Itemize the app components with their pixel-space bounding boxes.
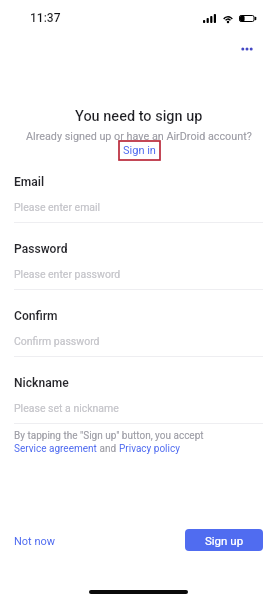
staticText: Confirm password <box>14 335 100 347</box>
staticText: Email <box>14 175 45 189</box>
staticText: Already signed up or have an AirDroid ac… <box>26 130 252 143</box>
staticText: Nickname <box>14 376 69 390</box>
button[interactable]: More options <box>231 33 263 65</box>
button[interactable]: Service agreement <box>14 443 97 455</box>
button[interactable]: Not now <box>14 535 56 548</box>
button[interactable]: Privacy policy <box>119 443 180 455</box>
staticText: Please set a nickname <box>14 402 119 414</box>
staticText: Not now <box>14 535 56 548</box>
button[interactable]: Sign in <box>119 141 160 160</box>
button[interactable]: Sign up <box>185 529 263 551</box>
staticText: By tapping the "Sign up" button, you acc… <box>14 430 204 442</box>
staticText: and <box>97 443 119 455</box>
staticText: Sign in <box>123 144 156 157</box>
staticText: Sign up <box>205 534 244 547</box>
staticText: Please enter email <box>14 201 101 213</box>
staticText: Password <box>14 242 68 256</box>
staticText: Please enter password <box>14 268 121 280</box>
staticText: Confirm <box>14 309 58 323</box>
staticText: 11:37 <box>30 11 61 25</box>
staticText: You need to sign up <box>75 108 203 125</box>
